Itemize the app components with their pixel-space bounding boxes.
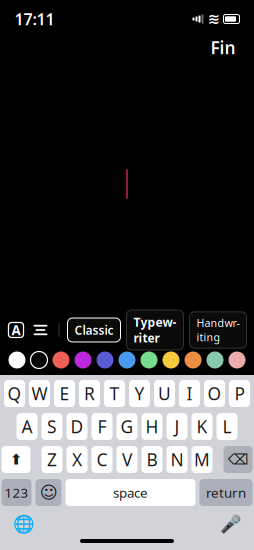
button[interactable]: Colour 8 <box>162 351 179 368</box>
button[interactable]: X <box>66 446 87 473</box>
staticText: T <box>109 382 119 405</box>
staticText: space <box>113 484 148 501</box>
button[interactable]: G <box>116 413 137 440</box>
staticText: 🌐 <box>12 514 34 534</box>
staticText: K <box>196 415 207 438</box>
button[interactable]: Delete <box>223 446 252 473</box>
staticText: ☺ <box>39 483 57 502</box>
button[interactable]: Emoji <box>35 479 61 506</box>
staticText: B <box>146 448 157 471</box>
button[interactable]: Shift <box>1 446 30 473</box>
button[interactable]: Z <box>41 446 62 473</box>
staticText: O <box>207 382 221 405</box>
button[interactable]: Typewriter <box>126 310 183 350</box>
button[interactable]: Colour 9 <box>184 351 201 368</box>
button[interactable]: Y <box>129 380 150 407</box>
staticText: I <box>186 382 192 405</box>
button[interactable]: F <box>91 413 112 440</box>
staticText: F <box>97 415 106 438</box>
button[interactable]: I <box>179 380 200 407</box>
staticText: N <box>170 448 183 471</box>
button[interactable]: W <box>29 380 50 407</box>
button[interactable]: C <box>91 446 112 473</box>
staticText: Handwriting <box>196 316 239 344</box>
button[interactable]: Colour 3 <box>52 351 69 368</box>
staticText: 123 <box>4 484 28 501</box>
button[interactable]: P <box>229 380 250 407</box>
staticText: X <box>72 448 82 471</box>
button[interactable]: L <box>216 413 237 440</box>
button[interactable]: Classic <box>67 318 120 342</box>
button[interactable]: T <box>104 380 125 407</box>
button[interactable]: Colour 11 <box>228 351 245 368</box>
button[interactable]: Handwriting <box>189 312 246 348</box>
staticText: A <box>11 321 20 339</box>
button[interactable]: Colour 2 <box>30 351 47 368</box>
staticText: C <box>96 448 107 471</box>
staticText: ⌫ <box>227 451 248 468</box>
button[interactable]: E <box>54 380 75 407</box>
staticText: V <box>122 448 132 471</box>
staticText: R <box>84 382 95 405</box>
staticText: W <box>31 382 47 405</box>
button[interactable]: Dictation <box>217 513 243 535</box>
staticText: Y <box>134 382 144 405</box>
button[interactable]: J <box>166 413 187 440</box>
button[interactable]: Text alignment <box>27 318 53 341</box>
staticText: Z <box>47 448 57 471</box>
staticText: G <box>120 415 133 438</box>
button[interactable]: Text background <box>4 318 27 341</box>
button[interactable]: Colour 6 <box>118 351 135 368</box>
button[interactable]: return <box>199 479 252 506</box>
staticText: Typewriter <box>133 314 176 346</box>
staticText: M <box>194 448 210 471</box>
button[interactable]: Colour 10 <box>206 351 223 368</box>
button[interactable]: K <box>191 413 212 440</box>
staticText: U <box>158 382 171 405</box>
button[interactable]: Colour 4 <box>74 351 91 368</box>
staticText: return <box>206 484 246 501</box>
button[interactable]: Colour 7 <box>140 351 157 368</box>
button[interactable]: Switch keyboard <box>10 513 36 535</box>
button[interactable]: Colour 5 <box>96 351 113 368</box>
staticText: 17:11 <box>14 8 54 30</box>
button[interactable]: S <box>41 413 62 440</box>
button[interactable]: N <box>166 446 187 473</box>
button[interactable]: Fin <box>202 32 243 63</box>
button[interactable]: Colour 1 <box>8 351 25 368</box>
button[interactable]: U <box>154 380 175 407</box>
button[interactable]: Q <box>4 380 25 407</box>
staticText: J <box>174 415 179 438</box>
button[interactable]: B <box>141 446 162 473</box>
button[interactable]: V <box>116 446 137 473</box>
button[interactable]: H <box>141 413 162 440</box>
staticText: E <box>59 382 69 405</box>
button[interactable]: O <box>204 380 225 407</box>
staticText: ≋ <box>207 11 219 27</box>
staticText: Fin <box>210 36 235 59</box>
staticText: D <box>70 415 83 438</box>
staticText: A <box>21 415 32 438</box>
staticText: S <box>47 415 57 438</box>
button[interactable]: M <box>191 446 212 473</box>
staticText: Classic <box>74 322 113 338</box>
button[interactable]: A <box>16 413 37 440</box>
staticText: ⬆ <box>10 451 22 468</box>
button[interactable]: space <box>65 479 195 506</box>
staticText: 🎤 <box>219 514 241 534</box>
staticText: P <box>234 382 244 405</box>
staticText: L <box>222 415 231 438</box>
staticText: Q <box>7 382 21 405</box>
button[interactable]: R <box>79 380 100 407</box>
button[interactable]: D <box>66 413 87 440</box>
button[interactable]: 123 <box>1 479 31 506</box>
staticText: H <box>145 415 158 438</box>
